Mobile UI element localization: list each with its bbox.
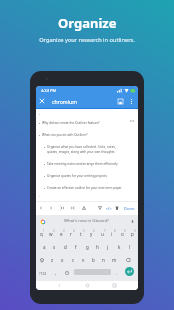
staticText: d xyxy=(64,244,67,250)
button[interactable]: Code block xyxy=(103,203,114,214)
button[interactable]: r xyxy=(66,227,76,240)
staticText: </> xyxy=(106,206,112,211)
staticText: b xyxy=(92,257,95,263)
button[interactable]: e xyxy=(56,227,66,240)
button[interactable]: Voice input xyxy=(128,217,136,225)
staticText: u xyxy=(101,231,104,237)
button[interactable]: b xyxy=(88,253,98,266)
staticText: m xyxy=(112,257,117,263)
button[interactable]: i xyxy=(107,227,117,240)
button[interactable]: Save page xyxy=(115,96,126,107)
button[interactable]: Recents xyxy=(110,281,119,290)
staticText: r xyxy=(70,231,72,237)
button[interactable]: Delete xyxy=(112,203,122,213)
button[interactable]: What can you do with Outliner? xyxy=(36,129,138,141)
button[interactable]: c xyxy=(68,253,78,266)
button[interactable]: Period xyxy=(112,268,122,278)
button[interactable]: More options xyxy=(126,96,136,106)
button[interactable]: Why did we create the Outliner feature? xyxy=(36,117,138,129)
button[interactable]: m xyxy=(109,253,119,266)
button[interactable]: Organize quotes for your writing project… xyxy=(36,170,138,182)
button[interactable]: Google xyxy=(39,218,46,225)
button[interactable]: x xyxy=(57,253,67,266)
staticText: Done xyxy=(124,206,135,212)
staticText: 4:24 PM xyxy=(41,88,57,93)
button[interactable]: s xyxy=(49,240,59,253)
staticText: c xyxy=(72,257,75,263)
button[interactable]: z xyxy=(47,253,57,266)
button[interactable]: Move up xyxy=(79,203,89,213)
staticText: f xyxy=(75,244,77,250)
button[interactable]: p xyxy=(127,227,137,240)
staticText: o xyxy=(121,231,124,237)
staticText: Organize xyxy=(58,14,117,32)
staticText: n xyxy=(102,257,105,263)
button[interactable]: Done xyxy=(123,205,136,213)
button[interactable]: j xyxy=(103,240,113,253)
button[interactable]: g xyxy=(82,240,92,253)
button[interactable]: a xyxy=(39,240,49,253)
staticText: Organize quotes for your writing project… xyxy=(47,174,107,178)
staticText: q xyxy=(40,231,43,237)
button[interactable]: Create an effective outline for your nex… xyxy=(36,182,138,194)
button[interactable]: Organize what you have collected - links… xyxy=(36,141,138,158)
button[interactable]: t xyxy=(76,227,86,240)
staticText: . xyxy=(116,270,118,276)
button[interactable]: y xyxy=(86,227,96,240)
button[interactable]: Backspace xyxy=(123,253,133,266)
staticText: Organize your research in outliners. xyxy=(39,36,135,44)
staticText: Organize what you have collected - links… xyxy=(47,145,116,154)
button[interactable]: Take meeting notes and arrange them effi… xyxy=(36,158,138,170)
button[interactable]: Outdent xyxy=(68,203,78,213)
staticText: 1 xyxy=(43,229,45,233)
staticText: 8 xyxy=(114,229,116,233)
staticText: 6 xyxy=(93,229,95,233)
staticText: k xyxy=(118,244,121,250)
button[interactable]: k xyxy=(114,240,124,253)
button[interactable]: u xyxy=(97,227,107,240)
button[interactable]: d xyxy=(60,240,70,253)
button[interactable]: o xyxy=(117,227,127,240)
button[interactable]: Back xyxy=(55,281,64,290)
staticText: x xyxy=(61,257,64,263)
staticText: e xyxy=(60,231,63,237)
staticText: 7 xyxy=(104,229,106,233)
staticText: 0 xyxy=(134,229,136,233)
button[interactable]: Previous xyxy=(36,203,46,213)
button[interactable]: ?123 xyxy=(37,268,49,278)
staticText: s xyxy=(53,244,56,250)
staticText: What can you do with Outliner? xyxy=(42,133,88,137)
button[interactable]: Enter xyxy=(125,267,134,276)
staticText: v xyxy=(82,257,85,263)
staticText: 2 xyxy=(53,229,55,233)
button[interactable]: Close xyxy=(36,95,48,107)
staticText: 9 xyxy=(124,229,126,233)
button[interactable]: Shift xyxy=(37,253,47,266)
staticText: 5 xyxy=(83,229,85,233)
button[interactable]: Move down xyxy=(95,203,105,213)
button[interactable]: w xyxy=(46,227,56,240)
staticText: z xyxy=(51,257,54,263)
button[interactable]: Indent xyxy=(57,203,67,213)
staticText: a xyxy=(43,244,46,250)
staticText: , xyxy=(55,270,57,276)
button[interactable]: Comma xyxy=(51,268,61,278)
staticText: g xyxy=(86,244,89,250)
staticText: p xyxy=(131,231,134,237)
button[interactable]: l xyxy=(125,240,135,253)
staticText: j xyxy=(107,244,109,250)
button[interactable]: q xyxy=(36,227,46,240)
button[interactable]: f xyxy=(71,240,81,253)
button[interactable]: Home xyxy=(83,281,92,290)
staticText: t xyxy=(80,231,82,237)
button[interactable]: Emoji xyxy=(62,268,71,277)
staticText: 4 xyxy=(73,229,75,233)
staticText: 3 xyxy=(63,229,65,233)
button[interactable]: v xyxy=(78,253,88,266)
staticText: Create an effective outline for your nex… xyxy=(47,186,122,190)
staticText: h xyxy=(96,244,99,250)
button[interactable]: Next xyxy=(46,203,56,213)
button[interactable]: h xyxy=(92,240,102,253)
button[interactable]: n xyxy=(98,253,108,266)
